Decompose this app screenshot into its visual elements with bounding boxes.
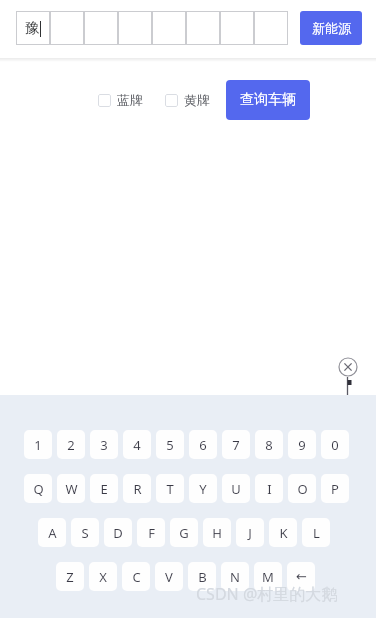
- button[interactable]: O: [288, 474, 316, 503]
- button[interactable]: I: [255, 474, 283, 503]
- staticText: A: [48, 524, 57, 542]
- staticText: ←: [296, 569, 307, 584]
- staticText: U: [231, 480, 241, 498]
- staticText: 查询车辆: [240, 91, 296, 109]
- staticText: W: [65, 480, 78, 498]
- staticText: 黄牌: [184, 92, 210, 108]
- button[interactable]: [118, 11, 152, 45]
- staticText: 蓝牌: [117, 92, 143, 108]
- button[interactable]: [50, 11, 84, 45]
- staticText: V: [165, 568, 173, 586]
- button[interactable]: H: [203, 518, 231, 547]
- staticText: 0: [331, 436, 339, 454]
- staticText: R: [133, 480, 142, 498]
- button[interactable]: [220, 11, 254, 45]
- staticText: L: [313, 524, 320, 542]
- staticText: O: [297, 480, 308, 498]
- staticText: C: [132, 568, 141, 586]
- staticText: G: [179, 524, 189, 542]
- staticText: 9: [298, 436, 306, 454]
- button[interactable]: R: [123, 474, 151, 503]
- button[interactable]: V: [155, 562, 183, 591]
- button[interactable]: C: [122, 562, 150, 591]
- button[interactable]: 9: [288, 430, 316, 459]
- staticText: X: [99, 568, 107, 586]
- button[interactable]: 7: [222, 430, 250, 459]
- button[interactable]: 4: [123, 430, 151, 459]
- button[interactable]: 0: [321, 430, 349, 459]
- button[interactable]: 黄牌: [165, 92, 210, 108]
- button[interactable]: G: [170, 518, 198, 547]
- staticText: T: [166, 480, 174, 498]
- staticText: 豫: [25, 19, 40, 38]
- staticText: D: [113, 524, 123, 542]
- button[interactable]: U: [222, 474, 250, 503]
- staticText: 4: [133, 436, 141, 454]
- button[interactable]: N: [221, 562, 249, 591]
- button[interactable]: Q: [24, 474, 52, 503]
- staticText: Q: [33, 480, 44, 498]
- staticText: F: [148, 524, 155, 542]
- staticText: K: [279, 524, 288, 542]
- button[interactable]: A: [38, 518, 66, 547]
- button[interactable]: 6: [189, 430, 217, 459]
- staticText: 5: [166, 436, 174, 454]
- staticText: B: [198, 568, 207, 586]
- button[interactable]: 查询车辆: [226, 80, 310, 120]
- button[interactable]: Close keyboard: [338, 357, 358, 377]
- button[interactable]: E: [90, 474, 118, 503]
- staticText: P: [331, 480, 339, 498]
- button[interactable]: W: [57, 474, 85, 503]
- button[interactable]: 蓝牌: [98, 92, 143, 108]
- button[interactable]: J: [236, 518, 264, 547]
- staticText: 新能源: [312, 20, 351, 36]
- button[interactable]: Z: [56, 562, 84, 591]
- button[interactable]: S: [71, 518, 99, 547]
- button[interactable]: 2: [57, 430, 85, 459]
- staticText: M: [262, 568, 274, 586]
- button[interactable]: Y: [189, 474, 217, 503]
- staticText: S: [81, 524, 89, 542]
- staticText: 3: [100, 436, 108, 454]
- staticText: 7: [232, 436, 240, 454]
- staticText: I: [267, 480, 272, 498]
- button[interactable]: ←: [287, 562, 315, 591]
- staticText: CSDN @村里的大鹅: [196, 583, 338, 605]
- button[interactable]: T: [156, 474, 184, 503]
- button[interactable]: 1: [24, 430, 52, 459]
- button[interactable]: B: [188, 562, 216, 591]
- button[interactable]: X: [89, 562, 117, 591]
- button[interactable]: D: [104, 518, 132, 547]
- staticText: 6: [199, 436, 207, 454]
- staticText: Y: [199, 480, 207, 498]
- button[interactable]: [186, 11, 220, 45]
- staticText: J: [248, 524, 252, 542]
- button[interactable]: P: [321, 474, 349, 503]
- button[interactable]: F: [137, 518, 165, 547]
- staticText: H: [212, 524, 222, 542]
- button[interactable]: 8: [255, 430, 283, 459]
- staticText: 1: [34, 436, 42, 454]
- staticText: 8: [265, 436, 273, 454]
- button[interactable]: 豫: [16, 11, 50, 45]
- button[interactable]: 5: [156, 430, 184, 459]
- button[interactable]: 3: [90, 430, 118, 459]
- staticText: N: [230, 568, 240, 586]
- staticText: Z: [66, 568, 74, 586]
- button[interactable]: [152, 11, 186, 45]
- staticText: E: [100, 480, 108, 498]
- staticText: 2: [67, 436, 75, 454]
- button[interactable]: [254, 11, 288, 45]
- button[interactable]: [84, 11, 118, 45]
- button[interactable]: K: [269, 518, 297, 547]
- button[interactable]: L: [302, 518, 330, 547]
- button[interactable]: M: [254, 562, 282, 591]
- button[interactable]: 新能源: [300, 11, 362, 45]
